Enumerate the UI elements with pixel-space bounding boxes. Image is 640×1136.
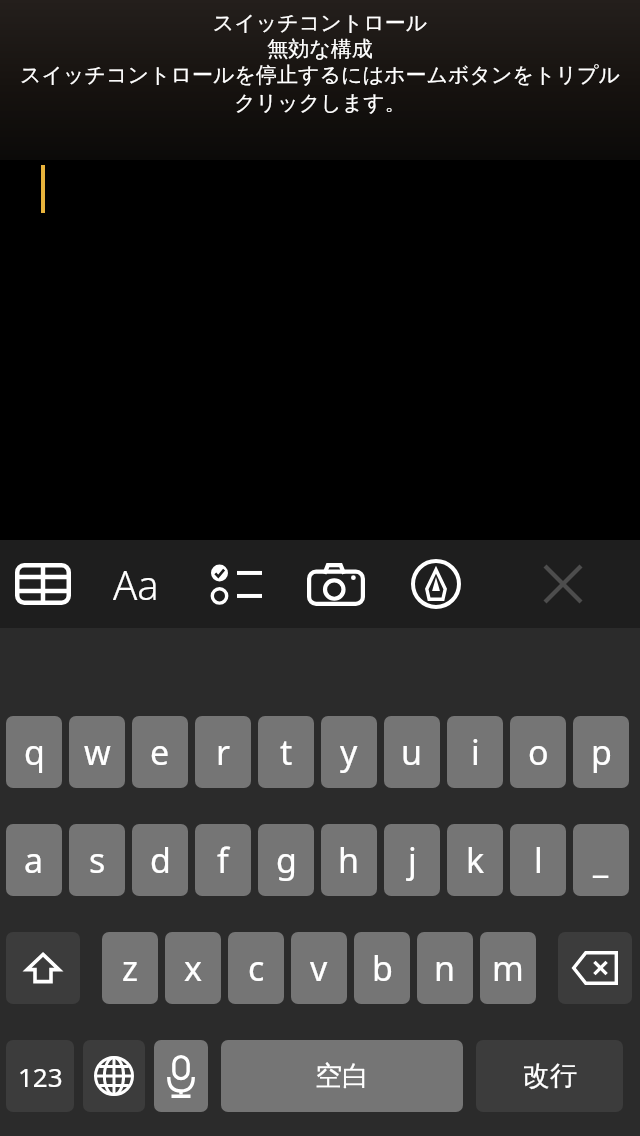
staticText: スイッチコントロールを停止するにはホームボタンをトリプルクリックします。 [14, 62, 626, 116]
button[interactable]: i [447, 716, 503, 788]
button[interactable]: _ [573, 824, 629, 896]
button[interactable]: j [384, 824, 440, 896]
button[interactable]: w [69, 716, 125, 788]
staticText: スイッチコントロール [14, 10, 626, 36]
button[interactable]: e [132, 716, 188, 788]
button[interactable]: m [480, 932, 536, 1004]
staticText: f [217, 837, 229, 883]
button[interactable]: y [321, 716, 377, 788]
staticText: j [408, 837, 417, 883]
button[interactable]: 123 [6, 1040, 74, 1112]
staticText: k [466, 837, 485, 883]
button[interactable]: o [510, 716, 566, 788]
button[interactable]: l [510, 824, 566, 896]
button[interactable]: a [6, 824, 62, 896]
staticText: r [216, 729, 231, 775]
button[interactable]: Checklist [186, 540, 286, 628]
staticText: a [24, 837, 44, 883]
staticText: c [248, 945, 265, 991]
staticText: 123 [18, 1059, 63, 1094]
staticText: _ [593, 837, 609, 883]
staticText: Aa [113, 557, 159, 611]
button[interactable]: t [258, 716, 314, 788]
button[interactable]: Table [0, 540, 85, 628]
button[interactable]: Camera [286, 540, 386, 628]
button[interactable]: n [417, 932, 473, 1004]
staticText: i [471, 729, 480, 775]
staticText: x [184, 945, 202, 991]
staticText: y [340, 729, 358, 775]
button[interactable]: Markup [386, 540, 485, 628]
button[interactable]: k [447, 824, 503, 896]
button[interactable]: v [291, 932, 347, 1004]
button[interactable]: q [6, 716, 62, 788]
button[interactable]: p [573, 716, 629, 788]
button[interactable]: u [384, 716, 440, 788]
staticText: d [150, 837, 171, 883]
button[interactable]: 改行 [476, 1040, 623, 1112]
staticText: 空白 [315, 1059, 369, 1093]
staticText: 改行 [523, 1059, 577, 1093]
button[interactable]: r [195, 716, 251, 788]
button[interactable]: Backspace [558, 932, 632, 1004]
staticText: m [492, 945, 524, 991]
staticText: o [528, 729, 549, 775]
staticText: q [24, 729, 45, 775]
staticText: s [89, 837, 106, 883]
staticText: l [534, 837, 543, 883]
button[interactable]: g [258, 824, 314, 896]
button[interactable]: b [354, 932, 410, 1004]
button[interactable]: x [165, 932, 221, 1004]
button[interactable]: d [132, 824, 188, 896]
staticText: p [591, 729, 612, 775]
button[interactable]: Close keyboard [485, 540, 640, 628]
staticText: 無効な構成 [14, 36, 626, 62]
staticText: z [122, 945, 138, 991]
button[interactable]: s [69, 824, 125, 896]
staticText: g [276, 837, 297, 883]
button[interactable]: Change keyboard [83, 1040, 145, 1112]
staticText: h [338, 837, 360, 883]
button[interactable]: Dictation [154, 1040, 208, 1112]
button[interactable]: f [195, 824, 251, 896]
staticText: e [150, 729, 170, 775]
button[interactable]: 空白 [221, 1040, 463, 1112]
button[interactable]: z [102, 932, 158, 1004]
staticText: u [401, 729, 423, 775]
staticText: b [372, 945, 393, 991]
button[interactable]: h [321, 824, 377, 896]
button[interactable]: Text format [85, 540, 186, 628]
button[interactable]: Shift [6, 932, 80, 1004]
staticText: w [84, 729, 111, 775]
staticText: t [280, 729, 293, 775]
staticText: v [310, 945, 328, 991]
staticText: n [434, 945, 456, 991]
button[interactable]: c [228, 932, 284, 1004]
